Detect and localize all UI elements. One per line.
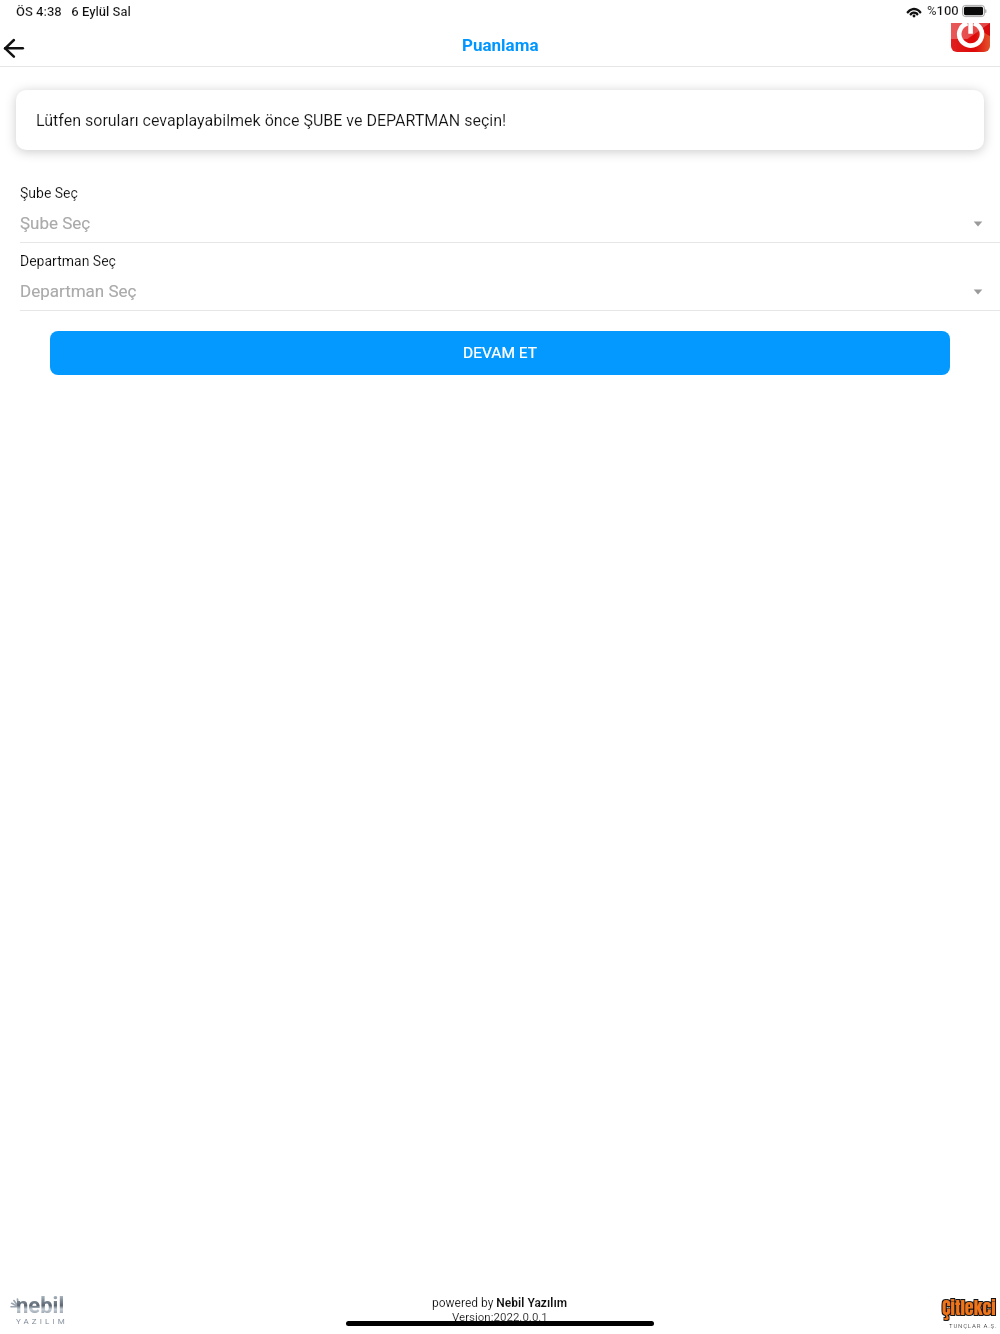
staticText: TUNÇLAR A.Ş. bbox=[949, 1322, 998, 1329]
staticText: DEVAM ET bbox=[463, 344, 537, 362]
staticText: Çitlekci bbox=[941, 1293, 995, 1320]
staticText: Puanlama bbox=[462, 35, 539, 55]
staticText: ÖS 4:38 6 Eylül Sal bbox=[16, 4, 131, 19]
staticText: nebil bbox=[16, 1293, 65, 1319]
button[interactable]: DEVAM ET bbox=[50, 331, 950, 375]
staticText: powered by Nebil Yazılım bbox=[432, 1296, 568, 1310]
button[interactable]: Departman Seç bbox=[0, 251, 1000, 312]
staticText: Departman Seç bbox=[20, 281, 137, 301]
button[interactable]: Back bbox=[0, 24, 42, 66]
staticText: Çitlekci bbox=[941, 1295, 995, 1322]
button[interactable]: Logout bbox=[951, 23, 990, 52]
staticText: Lütfen soruları cevaplayabilmek önce ŞUB… bbox=[36, 111, 507, 130]
staticText: Çitlekci bbox=[943, 1295, 997, 1322]
staticText: Departman Seç bbox=[20, 253, 116, 269]
staticText: %100 bbox=[927, 3, 959, 18]
staticText: Şube Seç bbox=[20, 213, 91, 233]
staticText: Çitlekci bbox=[943, 1293, 997, 1320]
staticText: Çitlekci bbox=[942, 1294, 996, 1321]
staticText: Version:2022.0.0.1 bbox=[452, 1310, 548, 1323]
staticText: YAZILIM bbox=[16, 1317, 68, 1326]
button[interactable]: Şube Seç bbox=[0, 183, 1000, 244]
staticText: Şube Seç bbox=[20, 185, 78, 201]
